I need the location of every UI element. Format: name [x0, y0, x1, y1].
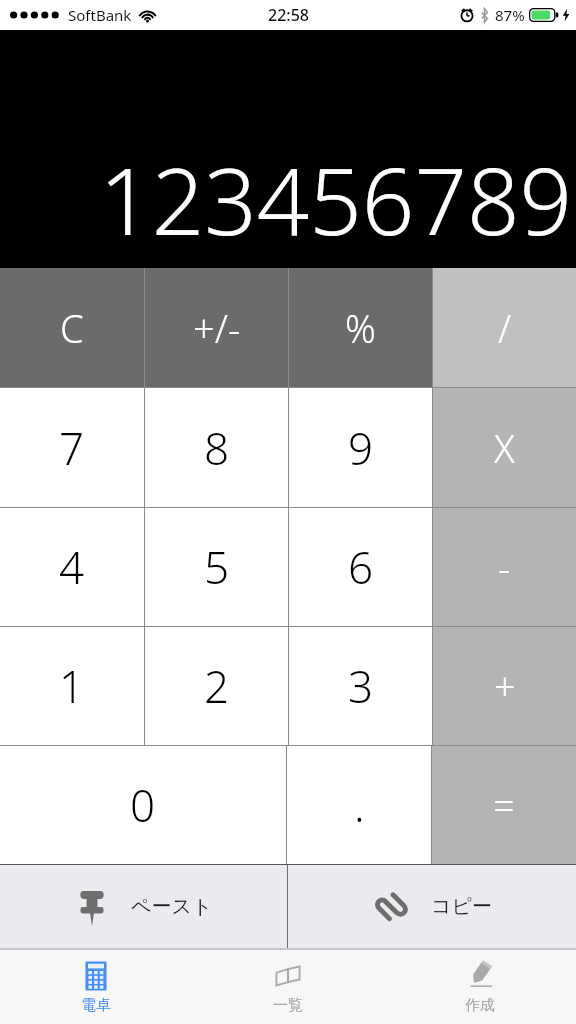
staticText: 87% — [495, 5, 525, 25]
staticText: 一覧 — [273, 996, 303, 1015]
button[interactable]: . — [287, 746, 431, 864]
button[interactable]: 作成 — [384, 950, 576, 1024]
staticText: = — [493, 779, 515, 831]
button[interactable]: ペースト — [0, 865, 287, 948]
staticText: コピー — [431, 894, 492, 919]
staticText: +/- — [193, 302, 241, 354]
staticText: 電卓 — [81, 996, 111, 1015]
button[interactable]: % — [289, 268, 432, 387]
button[interactable]: X — [433, 388, 576, 507]
button[interactable]: コピー — [288, 865, 576, 948]
staticText: ペースト — [131, 894, 213, 919]
button[interactable]: 1 — [0, 627, 144, 745]
staticText: - — [498, 541, 511, 593]
button[interactable]: 5 — [145, 508, 288, 626]
button[interactable]: 7 — [0, 388, 144, 507]
staticText: + — [494, 660, 516, 712]
staticText: % — [345, 302, 376, 354]
staticText: 1 — [59, 656, 85, 716]
staticText: C — [60, 302, 84, 354]
staticText: X — [494, 422, 515, 474]
staticText: 9 — [348, 418, 374, 478]
staticText: 4 — [59, 537, 85, 597]
staticText: 0 — [130, 775, 156, 835]
button[interactable]: / — [433, 268, 576, 387]
button[interactable]: 一覧 — [192, 950, 384, 1024]
button[interactable]: C — [0, 268, 144, 387]
button[interactable]: 4 — [0, 508, 144, 626]
button[interactable]: 2 — [145, 627, 288, 745]
button[interactable]: = — [432, 746, 576, 864]
staticText: 8 — [204, 418, 230, 478]
button[interactable]: 9 — [289, 388, 432, 507]
button[interactable]: + — [433, 627, 576, 745]
button[interactable]: +/- — [145, 268, 288, 387]
button[interactable]: 8 — [145, 388, 288, 507]
staticText: 5 — [204, 537, 230, 597]
staticText: 2 — [204, 656, 230, 716]
staticText: 作成 — [465, 996, 495, 1015]
staticText: 7 — [59, 418, 85, 478]
staticText: SoftBank — [68, 5, 132, 25]
staticText: / — [498, 302, 512, 354]
staticText: . — [354, 775, 365, 835]
button[interactable]: 電卓 — [0, 950, 192, 1024]
button[interactable]: 0 — [0, 746, 286, 864]
staticText: 22:58 — [268, 4, 309, 26]
staticText: 6 — [348, 537, 374, 597]
button[interactable]: 3 — [289, 627, 432, 745]
staticText: 123456789 — [99, 137, 572, 262]
staticText: 3 — [348, 656, 374, 716]
button[interactable]: 6 — [289, 508, 432, 626]
